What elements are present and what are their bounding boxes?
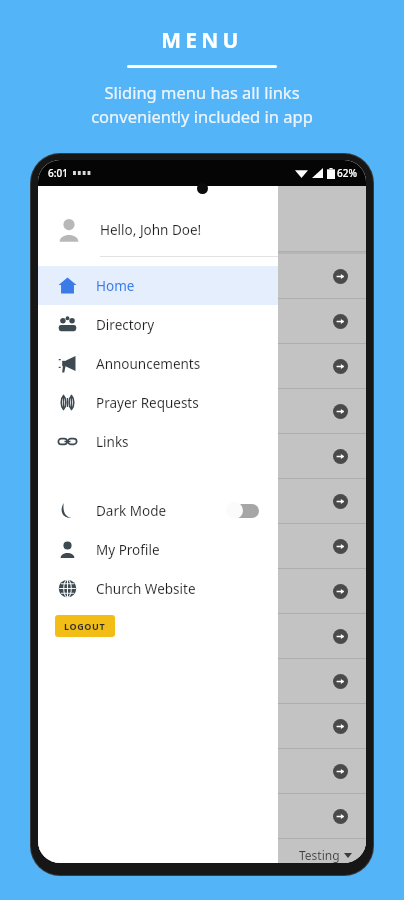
staticText: Home bbox=[96, 277, 135, 295]
staticText: 62% bbox=[337, 166, 357, 180]
button[interactable]: Open item bbox=[38, 389, 366, 433]
button[interactable]: Dark mode toggle bbox=[226, 502, 260, 519]
staticText: Church Website bbox=[96, 580, 196, 598]
staticText: MENU bbox=[161, 26, 243, 55]
button[interactable]: My Profile bbox=[38, 530, 278, 569]
other: Open item bbox=[333, 314, 348, 329]
staticText: My Profile bbox=[96, 541, 160, 559]
button[interactable]: Open item bbox=[38, 614, 366, 658]
staticText: Announcements bbox=[96, 355, 201, 373]
button[interactable]: Open item bbox=[38, 524, 366, 568]
staticText: 6:01 bbox=[48, 166, 68, 180]
button[interactable]: Open item bbox=[38, 659, 366, 703]
button[interactable]: Hello, John Doe! bbox=[38, 204, 278, 256]
button[interactable]: Open item bbox=[38, 434, 366, 478]
staticText: Links bbox=[96, 433, 129, 451]
other: Open item bbox=[333, 269, 348, 284]
button[interactable]: Open item bbox=[38, 299, 366, 343]
other: Open item bbox=[333, 539, 348, 554]
button[interactable]: Open item bbox=[38, 344, 366, 388]
staticText: Sliding menu has all links bbox=[104, 81, 300, 103]
other: Open item bbox=[333, 494, 348, 509]
button[interactable]: Links bbox=[38, 422, 278, 461]
button[interactable]: Open item bbox=[38, 479, 366, 523]
button[interactable]: Home bbox=[38, 266, 278, 305]
button[interactable]: Church Website bbox=[38, 569, 278, 608]
button[interactable]: Open item bbox=[38, 254, 366, 298]
button[interactable]: Announcements bbox=[38, 344, 278, 383]
other: Open item bbox=[333, 809, 348, 824]
button[interactable]: LOGOUT bbox=[55, 615, 115, 637]
staticText: Directory bbox=[96, 316, 155, 334]
other: Open item bbox=[333, 764, 348, 779]
other: Open item bbox=[333, 449, 348, 464]
staticText: Testing bbox=[299, 847, 340, 863]
staticText: Dark Mode bbox=[96, 502, 167, 520]
button[interactable]: Testing bbox=[299, 847, 352, 863]
button[interactable]: Open item bbox=[38, 569, 366, 613]
staticText: conveniently included in app bbox=[91, 105, 313, 127]
button[interactable]: Open item bbox=[38, 794, 366, 838]
staticText: Hello, John Doe! bbox=[100, 221, 202, 239]
staticText: Prayer Requests bbox=[96, 394, 199, 412]
button[interactable]: Open item bbox=[38, 749, 366, 793]
button[interactable]: Dark Mode bbox=[38, 491, 278, 530]
button[interactable]: Open item bbox=[38, 704, 366, 748]
other: Open item bbox=[333, 584, 348, 599]
other: Open item bbox=[333, 404, 348, 419]
button[interactable]: Directory bbox=[38, 305, 278, 344]
button[interactable]: Prayer Requests bbox=[38, 383, 278, 422]
other: Open item bbox=[333, 674, 348, 689]
other: Open item bbox=[333, 719, 348, 734]
other: Open item bbox=[333, 629, 348, 644]
staticText: LOGOUT bbox=[64, 620, 106, 632]
other: Open item bbox=[333, 359, 348, 374]
